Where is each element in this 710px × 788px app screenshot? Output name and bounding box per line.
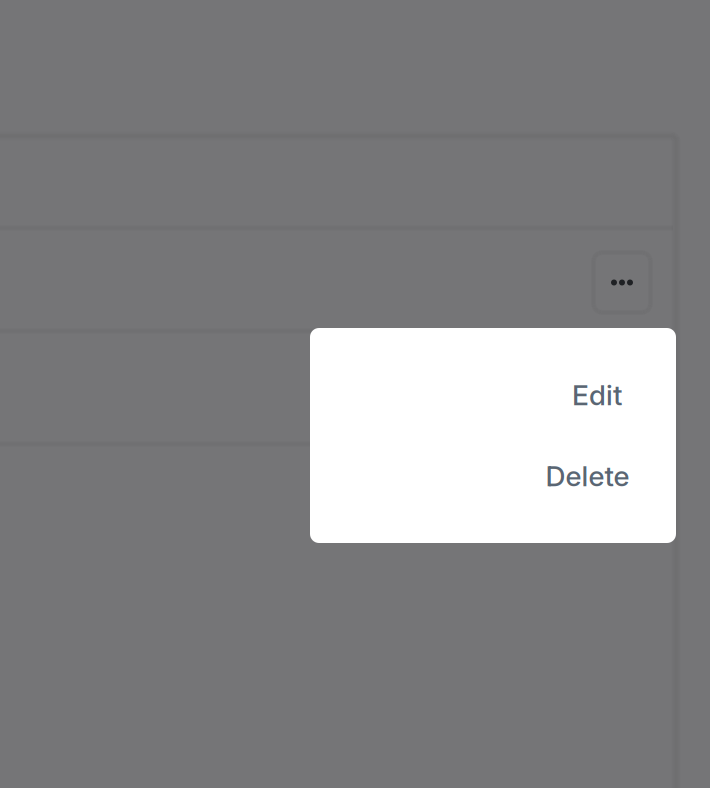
button[interactable]: More options — [593, 252, 650, 312]
staticText: Delete — [545, 459, 629, 493]
button[interactable]: Delete — [310, 435, 676, 516]
staticText: Edit — [572, 378, 622, 412]
button[interactable]: Edit — [310, 354, 676, 435]
